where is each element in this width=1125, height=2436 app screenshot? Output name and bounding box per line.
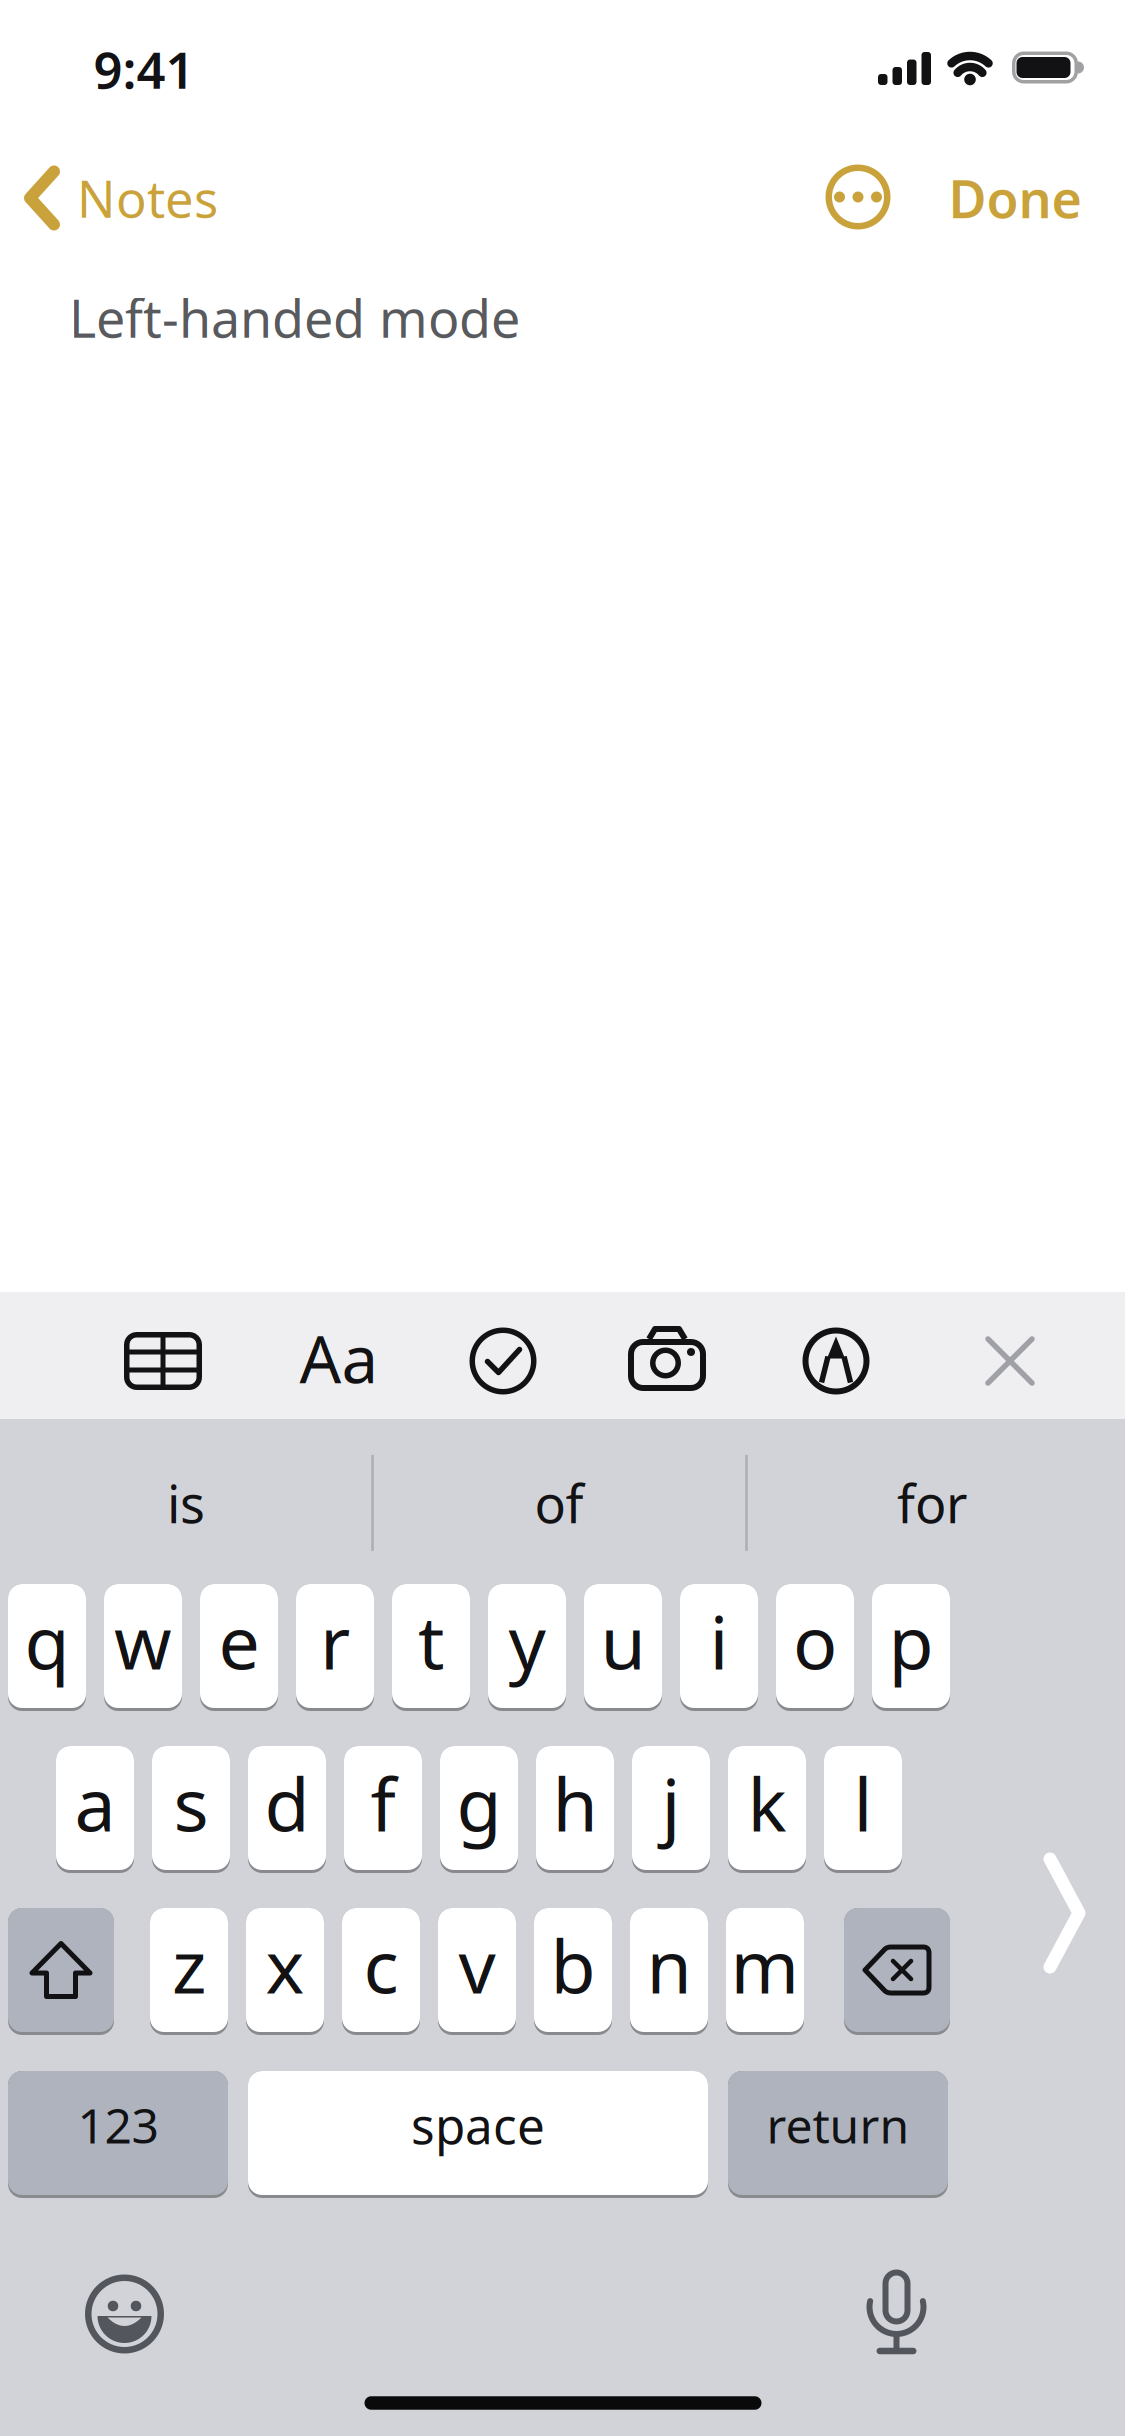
button[interactable]: s (152, 1746, 230, 1873)
staticText: w (114, 1592, 172, 1690)
button[interactable]: Delete (844, 1908, 950, 2035)
staticText: Notes (77, 164, 218, 232)
button[interactable]: Markup (801, 1326, 871, 1396)
button[interactable]: is (1, 1438, 371, 1568)
staticText: space (411, 2092, 545, 2158)
button[interactable]: u (584, 1584, 662, 1711)
staticText: of (534, 1468, 583, 1538)
staticText: z (172, 1916, 206, 2014)
staticText: Done (948, 163, 1081, 233)
staticText: j (661, 1754, 680, 1852)
button[interactable]: b (534, 1908, 612, 2035)
button[interactable]: i (680, 1584, 758, 1711)
button[interactable]: n (630, 1908, 708, 2035)
button[interactable]: c (342, 1908, 420, 2035)
staticText: for (897, 1468, 967, 1538)
button[interactable]: w (104, 1584, 182, 1711)
staticText: y (508, 1592, 545, 1690)
staticText: Aa (299, 1315, 378, 1401)
button[interactable]: y (488, 1584, 566, 1711)
staticText: h (552, 1754, 597, 1852)
button[interactable]: p (872, 1584, 950, 1711)
button[interactable]: l (824, 1746, 902, 1873)
staticText: p (888, 1592, 933, 1690)
staticText: m (730, 1916, 799, 2014)
button[interactable]: Format (299, 1315, 378, 1401)
staticText: o (793, 1592, 837, 1690)
button[interactable]: h (536, 1746, 614, 1873)
button[interactable]: Dismiss keyboard (986, 1337, 1034, 1385)
staticText: f (370, 1754, 395, 1852)
staticText: Left-handed mode (69, 283, 520, 352)
staticText: e (218, 1592, 259, 1690)
staticText: d (264, 1754, 309, 1852)
button[interactable]: r (296, 1584, 374, 1711)
button[interactable]: x (246, 1908, 324, 2035)
button[interactable]: k (728, 1746, 806, 1873)
staticText: n (646, 1916, 691, 2014)
button[interactable]: e (200, 1584, 278, 1711)
staticText: 123 (77, 2093, 158, 2157)
staticText: is (167, 1468, 205, 1538)
button[interactable]: g (440, 1746, 518, 1873)
button[interactable]: of (374, 1438, 744, 1568)
button[interactable]: space (248, 2071, 708, 2198)
staticText: b (550, 1916, 595, 2014)
button[interactable]: Shift (8, 1908, 114, 2035)
staticText: l (853, 1754, 872, 1852)
button[interactable]: m (726, 1908, 804, 2035)
staticText: s (173, 1754, 208, 1852)
staticText: t (418, 1592, 444, 1690)
staticText: v (458, 1916, 495, 2014)
button[interactable]: f (344, 1746, 422, 1873)
button[interactable]: Done (948, 163, 1081, 233)
staticText: q (24, 1592, 69, 1690)
button[interactable]: 123 (8, 2071, 228, 2198)
button[interactable]: d (248, 1746, 326, 1873)
button[interactable]: t (392, 1584, 470, 1711)
button[interactable]: z (150, 1908, 228, 2035)
button[interactable]: for (747, 1438, 1117, 1568)
staticText: 9:41 (93, 35, 194, 103)
button[interactable]: Notes (24, 164, 218, 232)
staticText: c (363, 1916, 398, 2014)
button[interactable]: a (56, 1746, 134, 1873)
button[interactable]: o (776, 1584, 854, 1711)
staticText: r (320, 1592, 350, 1690)
button[interactable]: Emoji (84, 2274, 164, 2354)
staticText: return (766, 2093, 909, 2157)
button[interactable]: v (438, 1908, 516, 2035)
staticText: x (265, 1916, 304, 2014)
button[interactable]: Switch keyboard position (1047, 1856, 1085, 1970)
button[interactable]: q (8, 1584, 86, 1711)
button[interactable]: Dictate (866, 2263, 926, 2359)
staticText: a (74, 1754, 115, 1852)
staticText: k (747, 1754, 786, 1852)
button[interactable]: Insert table (123, 1331, 203, 1391)
staticText: g (456, 1754, 501, 1852)
staticText: i (709, 1592, 728, 1690)
button[interactable]: j (632, 1746, 710, 1873)
staticText: u (600, 1592, 645, 1690)
button[interactable]: return (728, 2071, 948, 2198)
button[interactable]: Insert photo (627, 1327, 707, 1393)
button[interactable]: More (825, 164, 890, 229)
button[interactable]: Checklist (468, 1326, 538, 1396)
